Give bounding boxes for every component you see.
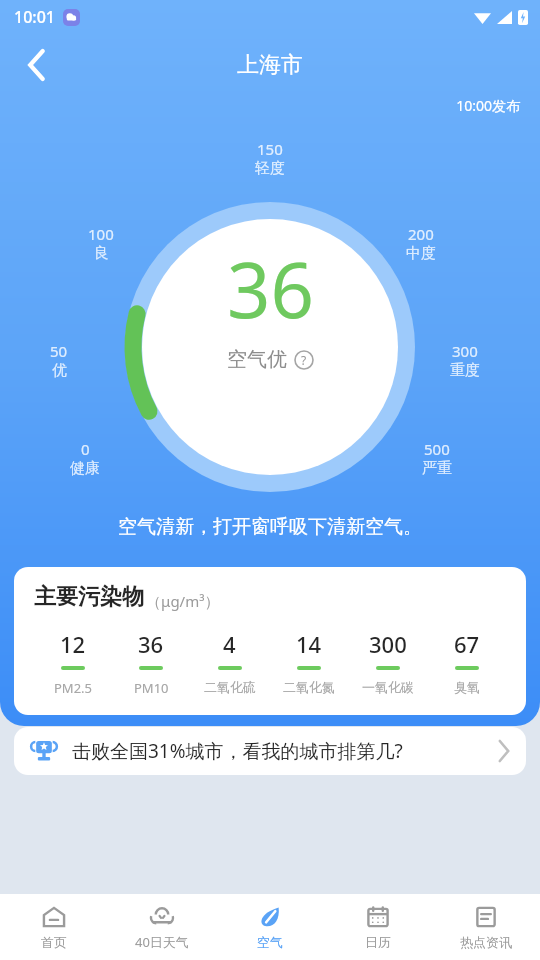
staticText: 臭氧 bbox=[454, 679, 480, 695]
staticText: 轻度 bbox=[255, 159, 285, 178]
staticText: 500 bbox=[424, 439, 450, 459]
staticText: 二氧化氮 bbox=[283, 679, 335, 695]
staticText: 10:01 bbox=[14, 6, 55, 28]
button[interactable]: 空气 bbox=[216, 894, 324, 960]
staticText: 67 bbox=[454, 629, 480, 659]
staticText: 36 bbox=[227, 237, 314, 341]
staticText: 300 bbox=[369, 629, 407, 659]
staticText: 空气优 bbox=[227, 347, 287, 372]
staticText: 日历 bbox=[365, 934, 391, 950]
staticText: 中度 bbox=[406, 244, 436, 263]
button[interactable]: 40日天气 bbox=[108, 894, 216, 960]
button[interactable]: 主要污染物 bbox=[14, 567, 526, 715]
staticText: 一氧化碳 bbox=[362, 679, 414, 695]
button[interactable]: 热点资讯 bbox=[432, 894, 540, 960]
staticText: 40日天气 bbox=[135, 933, 189, 951]
staticText: 主要污染物 bbox=[34, 583, 144, 611]
staticText: 健康 bbox=[70, 459, 100, 478]
staticText: PM2.5 bbox=[54, 679, 93, 697]
button[interactable]: Back bbox=[12, 40, 62, 90]
staticText: 击败全国31%城市，看我的城市排第几? bbox=[72, 738, 490, 764]
staticText: 二氧化硫 bbox=[204, 679, 256, 695]
staticText: 100 bbox=[88, 224, 114, 244]
staticText: 重度 bbox=[450, 361, 480, 380]
staticText: ? bbox=[301, 352, 307, 368]
staticText: 热点资讯 bbox=[460, 934, 512, 950]
staticText: （μg/m³） bbox=[146, 591, 220, 611]
button[interactable]: Air quality info bbox=[294, 350, 314, 370]
staticText: PM10 bbox=[134, 679, 169, 697]
staticText: 14 bbox=[296, 629, 322, 659]
staticText: 150 bbox=[257, 139, 283, 159]
staticText: 300 bbox=[452, 341, 478, 361]
staticText: 4 bbox=[223, 629, 236, 659]
button[interactable]: 击败全国31%城市，看我的城市排第几? bbox=[14, 727, 526, 775]
staticText: 0 bbox=[81, 439, 90, 459]
staticText: 首页 bbox=[41, 934, 67, 950]
staticText: 12 bbox=[60, 629, 86, 659]
staticText: 36 bbox=[138, 629, 164, 659]
staticText: 空气清新，打开窗呼吸下清新空气。 bbox=[0, 515, 540, 539]
button[interactable]: 首页 bbox=[0, 894, 108, 960]
staticText: 200 bbox=[408, 224, 434, 244]
button[interactable]: 日历 bbox=[324, 894, 432, 960]
staticText: 优 bbox=[52, 361, 67, 380]
staticText: 上海市 bbox=[237, 51, 303, 79]
staticText: 空气 bbox=[257, 934, 283, 950]
staticText: 10:00发布 bbox=[0, 96, 520, 115]
staticText: 50 bbox=[50, 341, 68, 361]
staticText: 良 bbox=[94, 244, 109, 263]
staticText: 严重 bbox=[422, 459, 452, 478]
